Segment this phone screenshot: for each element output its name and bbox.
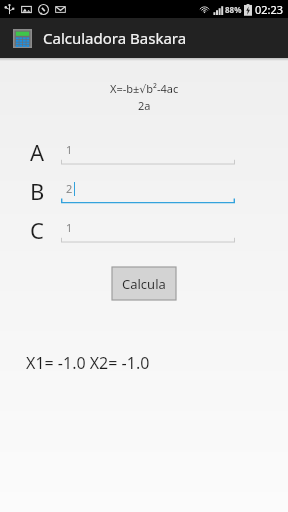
staticText: C	[30, 215, 44, 245]
staticText: 2a	[138, 98, 151, 113]
staticText: Calculadora Baskara	[43, 28, 187, 48]
button[interactable]: A	[30, 137, 235, 167]
staticText: 02:23	[255, 2, 284, 17]
staticText: X1= -1.0 X2= -1.0	[26, 352, 150, 374]
staticText: 88%	[225, 4, 242, 15]
staticText: 1	[66, 220, 73, 235]
staticText: 2	[66, 181, 73, 196]
button[interactable]: C	[30, 215, 235, 245]
staticText: Calcula	[122, 275, 166, 293]
staticText: A	[30, 137, 45, 167]
staticText: 1	[66, 142, 73, 157]
button[interactable]: Calcula	[112, 267, 176, 300]
staticText: X=-b±√b²-4ac	[110, 81, 179, 96]
button[interactable]: B	[30, 176, 235, 206]
staticText: B	[30, 176, 45, 206]
